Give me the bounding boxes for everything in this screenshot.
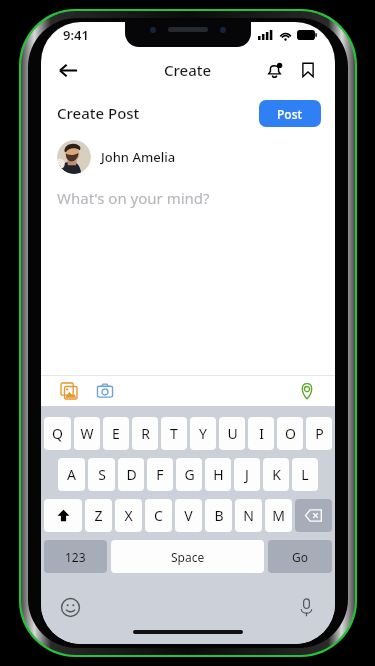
button[interactable]: Z [85,499,112,532]
button[interactable]: Add photo [57,379,81,403]
staticText: P [315,424,324,443]
button[interactable]: Voice input [293,594,319,620]
staticText: F [156,465,164,484]
staticText: Go [292,549,308,565]
staticText: M [272,506,285,525]
button[interactable]: B [205,499,232,532]
button[interactable]: Post [259,100,321,127]
button[interactable]: S [88,458,115,491]
staticText: What's on your mind? [57,188,210,208]
staticText: R [141,424,150,443]
button[interactable]: L [292,458,318,491]
button[interactable] [57,140,91,174]
button[interactable]: E [103,417,129,450]
button[interactable]: P [306,417,332,450]
staticText: N [243,506,254,525]
staticText: V [184,506,193,525]
button[interactable]: W [74,417,100,450]
button[interactable]: Emoji [57,594,83,620]
button[interactable]: Delete [295,499,332,532]
button[interactable]: H [205,458,231,491]
staticText: J [245,465,249,484]
staticText: Space [171,549,205,565]
staticText: O [285,424,296,443]
button[interactable]: Space [111,540,264,573]
button[interactable]: T [161,417,187,450]
staticText: Create Post [57,103,140,123]
staticText: H [213,465,224,484]
staticText: Q [52,424,63,443]
button[interactable]: I [248,417,274,450]
staticText: A [67,465,76,484]
button[interactable]: A [58,458,85,491]
staticText: Z [94,506,103,525]
button[interactable]: J [234,458,260,491]
button[interactable]: Add location [295,379,319,403]
button[interactable]: G [176,458,202,491]
button[interactable]: U [219,417,245,450]
staticText: 9:41 [63,26,89,44]
staticText: I [259,424,264,443]
button[interactable]: N [235,499,262,532]
button[interactable]: Camera [93,379,117,403]
button[interactable]: C [145,499,172,532]
button[interactable]: Back [51,53,85,87]
button[interactable]: V [175,499,202,532]
staticText: C [154,506,163,525]
staticText: Create [164,60,212,80]
button[interactable]: Y [190,417,216,450]
button[interactable]: K [263,458,289,491]
staticText: D [126,465,137,484]
staticText: W [80,424,94,443]
button[interactable]: 123 [44,540,107,573]
button[interactable]: X [115,499,142,532]
button[interactable]: Shift [44,499,82,532]
staticText: Post [277,106,303,122]
staticText: B [214,506,224,525]
button[interactable]: Notifications [259,55,289,85]
staticText: E [112,424,120,443]
button[interactable]: M [265,499,292,532]
staticText: T [170,424,178,443]
staticText: X [124,506,133,525]
staticText: L [301,465,309,484]
button[interactable]: Go [268,540,332,573]
staticText: U [227,424,238,443]
staticText: G [184,465,195,484]
button[interactable]: F [147,458,173,491]
button[interactable]: Bookmark [293,55,323,85]
staticText: Y [199,424,207,443]
button[interactable]: R [132,417,158,450]
button[interactable]: O [277,417,303,450]
staticText: John Amelia [101,148,176,166]
button[interactable]: D [118,458,144,491]
button[interactable]: Q [44,417,71,450]
staticText: 123 [65,549,86,565]
staticText: S [98,465,106,484]
staticText: K [272,465,281,484]
